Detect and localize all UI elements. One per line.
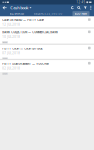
staticText: BALANCE 24,560.00	[33, 12, 62, 15]
staticText: 02 JUL 2018	[2, 67, 20, 70]
button[interactable]: Back	[0, 5, 10, 10]
button[interactable]: PETTY CASH — CASH EXPENSE	[0, 45, 94, 59]
staticText: ALL ENTRIES	[9, 12, 23, 15]
button[interactable]: Sync	[69, 6, 76, 9]
staticText: BANK	[3, 41, 7, 43]
button[interactable]: Search	[76, 6, 82, 9]
button[interactable]: ADD NEW	[72, 11, 89, 16]
staticText: CASH	[3, 58, 7, 59]
staticText: 10 JUL 2018	[2, 35, 20, 39]
staticText: 07 JUL 2018	[2, 51, 20, 55]
staticText: Cashbook	[10, 5, 28, 10]
button[interactable]: BANK COLLECTION — COMMERCIAL BANK	[0, 29, 94, 44]
button[interactable]: Filter	[82, 6, 88, 9]
button[interactable]: Cashbook	[10, 5, 31, 10]
button[interactable]: More options	[88, 6, 94, 9]
staticText: BANK COLLECTION — COMMERCIAL BANK	[2, 30, 58, 34]
staticText: ADD NEW	[74, 12, 87, 15]
staticText: PETTY CASH — CASH EXPENSE	[2, 47, 42, 50]
button[interactable]: PETTY DISBURSEMENT — VOUCHER	[0, 60, 94, 72]
staticText: 12:45	[76, 0, 85, 4]
staticText: PETTY DISBURSEMENT — VOUCHER	[2, 62, 49, 65]
staticText: CASH	[3, 73, 7, 75]
staticText: CASH IN HAND — PETTY CASH	[2, 18, 44, 22]
button[interactable]: CASH IN HAND — PETTY CASH	[0, 16, 94, 27]
staticText: 12 JUL 2018	[2, 23, 20, 26]
